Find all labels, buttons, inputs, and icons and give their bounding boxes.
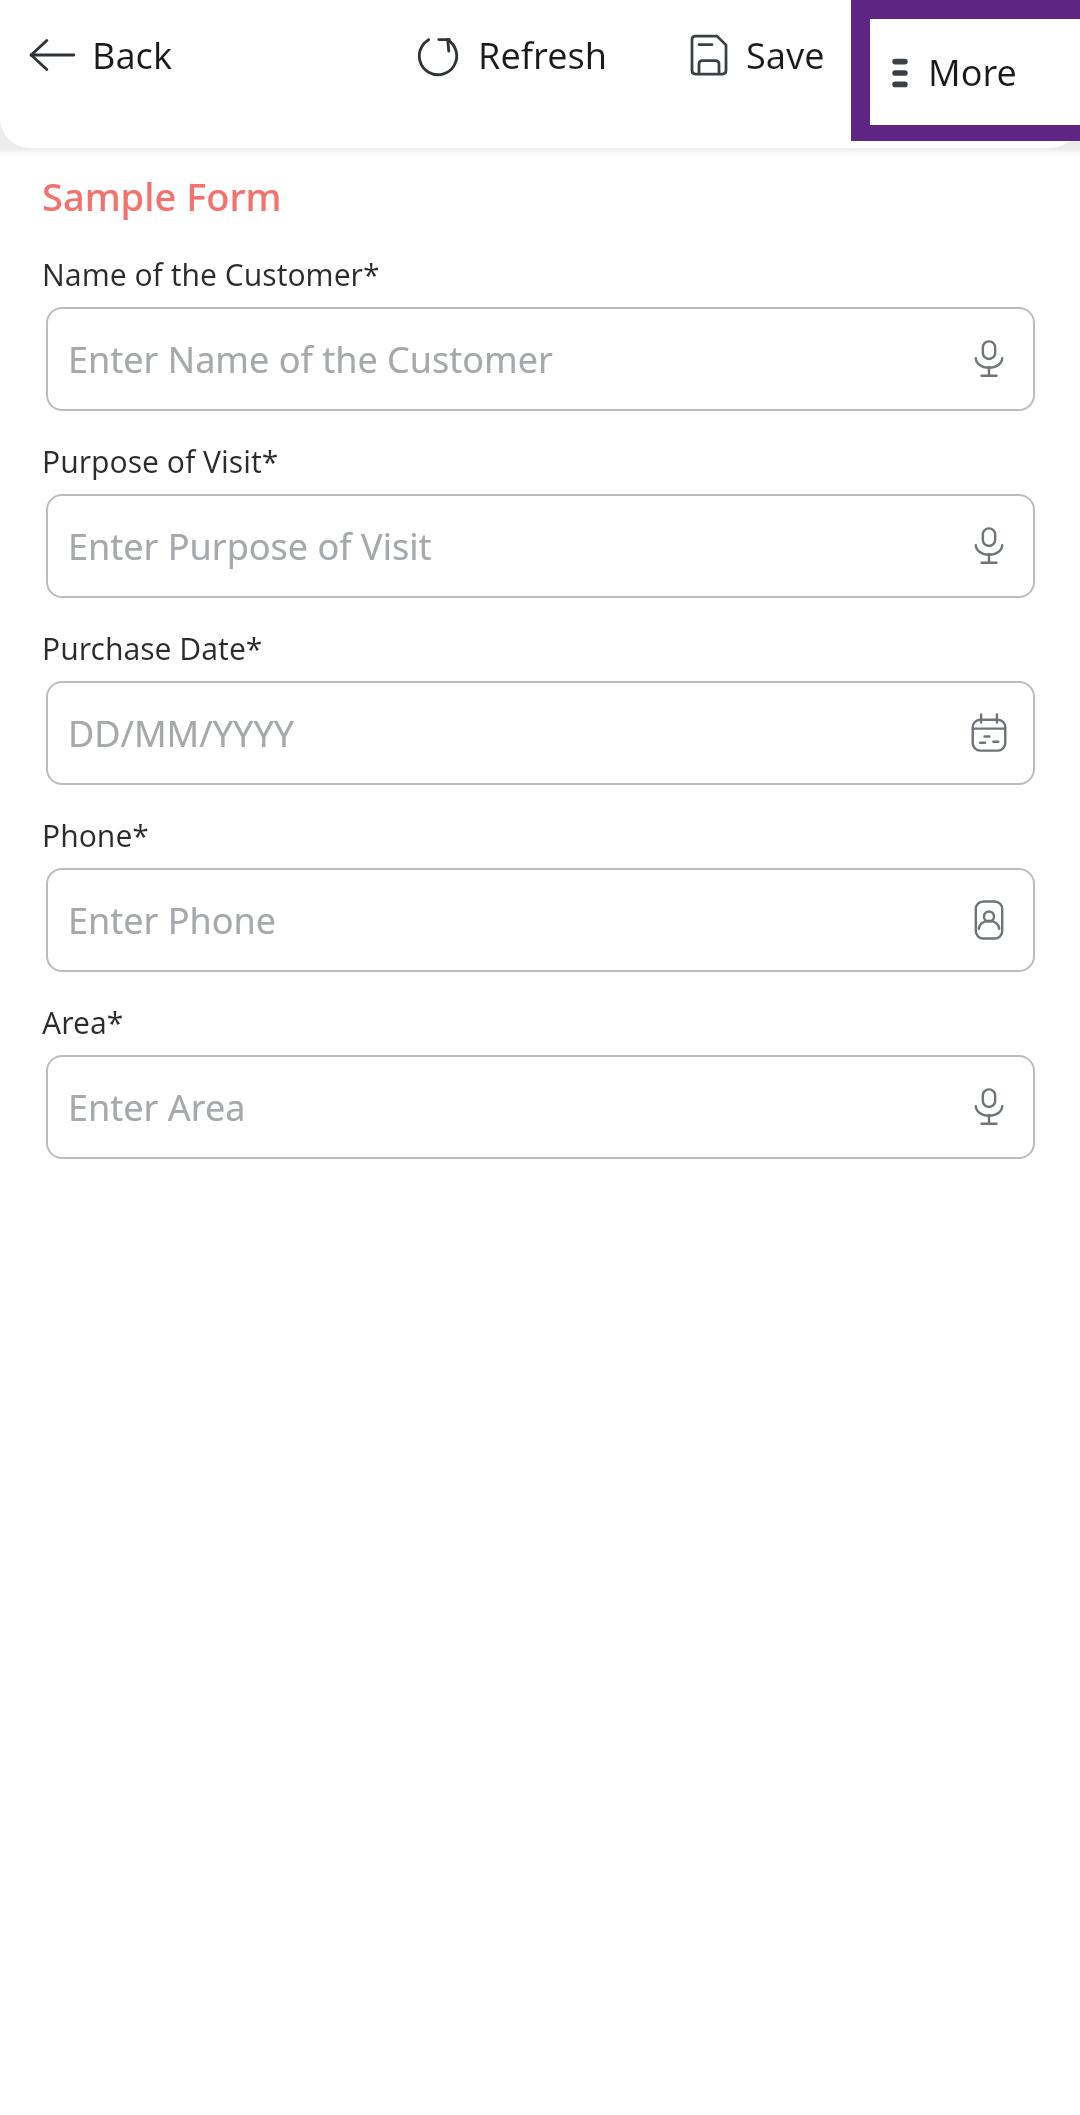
staticText: Enter Phone — [68, 896, 965, 945]
button[interactable]: Enter Purpose of Visit — [46, 494, 1035, 598]
staticText: Enter Name of the Customer — [68, 335, 965, 384]
staticText: Area* — [42, 1002, 124, 1043]
staticText: DD/MM/YYYY — [68, 709, 965, 758]
staticText: Purchase Date* — [42, 628, 263, 669]
button[interactable]: Choose contact — [965, 896, 1013, 944]
staticText: Enter Area — [68, 1083, 965, 1132]
button[interactable]: DD/MM/YYYY — [46, 681, 1035, 785]
button[interactable]: Enter Phone — [46, 868, 1035, 972]
button[interactable]: More — [870, 19, 1080, 125]
button[interactable]: Voice input — [965, 335, 1013, 383]
button[interactable]: Back — [26, 0, 173, 110]
staticText: Save — [746, 31, 825, 80]
staticText: Sample Form — [42, 170, 282, 222]
staticText: Back — [92, 31, 173, 80]
staticText: Phone* — [42, 815, 149, 856]
button[interactable]: Enter Name of the Customer — [46, 307, 1035, 411]
staticText: Purpose of Visit* — [42, 441, 279, 482]
staticText: Refresh — [478, 31, 608, 80]
staticText: Enter Purpose of Visit — [68, 522, 965, 571]
button[interactable]: Save — [684, 0, 825, 110]
button[interactable]: Voice input — [965, 522, 1013, 570]
button[interactable]: Voice input — [965, 1083, 1013, 1131]
button[interactable]: Refresh — [412, 0, 608, 110]
staticText: More — [928, 48, 1017, 97]
button[interactable]: Pick date — [965, 709, 1013, 757]
button[interactable]: Enter Area — [46, 1055, 1035, 1159]
staticText: Name of the Customer* — [42, 254, 380, 295]
